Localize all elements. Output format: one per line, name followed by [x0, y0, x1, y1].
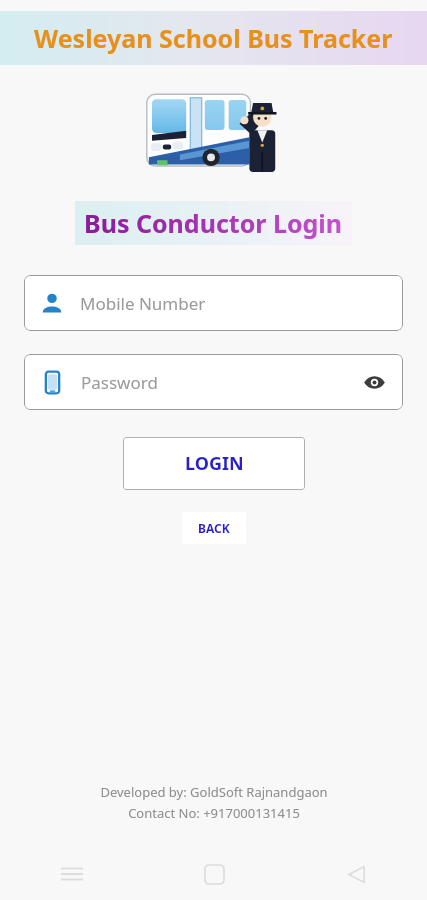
staticText: Bus Conductor Login	[84, 206, 343, 240]
button[interactable]: Recent apps	[0, 848, 143, 900]
staticText: Wesleyan School Bus Tracker	[34, 21, 393, 55]
staticText: Developed by: GoldSoft Rajnandgaon	[100, 783, 328, 801]
staticText: Contact No: +917000131415	[128, 804, 300, 822]
button[interactable]: Password	[24, 354, 403, 410]
staticText: LOGIN	[185, 451, 244, 476]
staticText: BACK	[198, 520, 230, 536]
button[interactable]: BACK	[182, 512, 246, 544]
button[interactable]: LOGIN	[123, 437, 305, 490]
staticText: Password	[81, 371, 363, 394]
button[interactable]: Home	[143, 848, 285, 900]
staticText: Mobile Number	[80, 292, 386, 315]
button[interactable]: Mobile Number	[24, 275, 403, 331]
